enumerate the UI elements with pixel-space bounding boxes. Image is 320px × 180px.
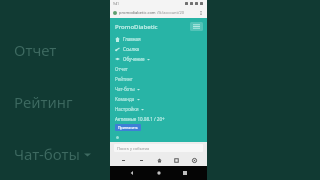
button[interactable]: More options [197, 9, 204, 16]
staticText: PromoDiabetic [115, 23, 158, 31]
button[interactable]: Чат-боты [115, 84, 203, 94]
staticText: Ссылка [123, 46, 139, 52]
button[interactable]: Back [118, 155, 128, 165]
button[interactable]: Secure [113, 7, 204, 18]
button[interactable]: Настройки [115, 104, 203, 114]
button[interactable]: Forward [136, 155, 146, 165]
button[interactable]: Recents [180, 168, 190, 178]
button[interactable]: Menu [190, 22, 203, 31]
button[interactable]: Account [115, 135, 120, 140]
button[interactable]: Рейтинг [14, 92, 110, 112]
button[interactable]: Отчет [115, 64, 203, 74]
button[interactable]: Команда [115, 94, 203, 104]
button[interactable]: Отчет [14, 40, 110, 60]
staticText: Главная [123, 36, 141, 42]
staticText: Рейтинг [115, 76, 133, 82]
button[interactable]: Обучение [115, 54, 203, 64]
button[interactable]: Tabs [171, 155, 181, 165]
staticText: Активные 10.08.1 / 20+ [115, 116, 165, 122]
staticText: Отчет [115, 66, 128, 72]
staticText: Команда [115, 96, 135, 102]
staticText: /lk/account/20 [157, 10, 185, 15]
button[interactable]: Пригласить [115, 124, 141, 131]
staticText: Обучение [123, 56, 145, 62]
button[interactable]: Поиск у события [114, 144, 203, 152]
button[interactable]: Menu [189, 155, 199, 165]
button[interactable]: Home [154, 168, 164, 178]
other: Secure [113, 11, 117, 15]
button[interactable]: Home [154, 155, 164, 165]
button[interactable]: Ссылка [115, 44, 203, 54]
staticText: Отчет [14, 40, 57, 60]
staticText: 9:41 [113, 2, 119, 6]
staticText: Рейтинг [14, 92, 73, 112]
button[interactable]: Back [127, 168, 137, 178]
button[interactable]: Чат-боты [14, 144, 110, 164]
staticText: Настройки [115, 106, 139, 112]
staticText: promodiabetic.com [119, 10, 156, 15]
staticText: Чат-боты [14, 144, 80, 164]
button[interactable]: Рейтинг [115, 74, 203, 84]
staticText: Поиск у события [117, 146, 150, 151]
button[interactable]: Главная [115, 34, 203, 44]
staticText: Чат-боты [115, 86, 135, 92]
staticText: Пригласить [118, 125, 138, 130]
